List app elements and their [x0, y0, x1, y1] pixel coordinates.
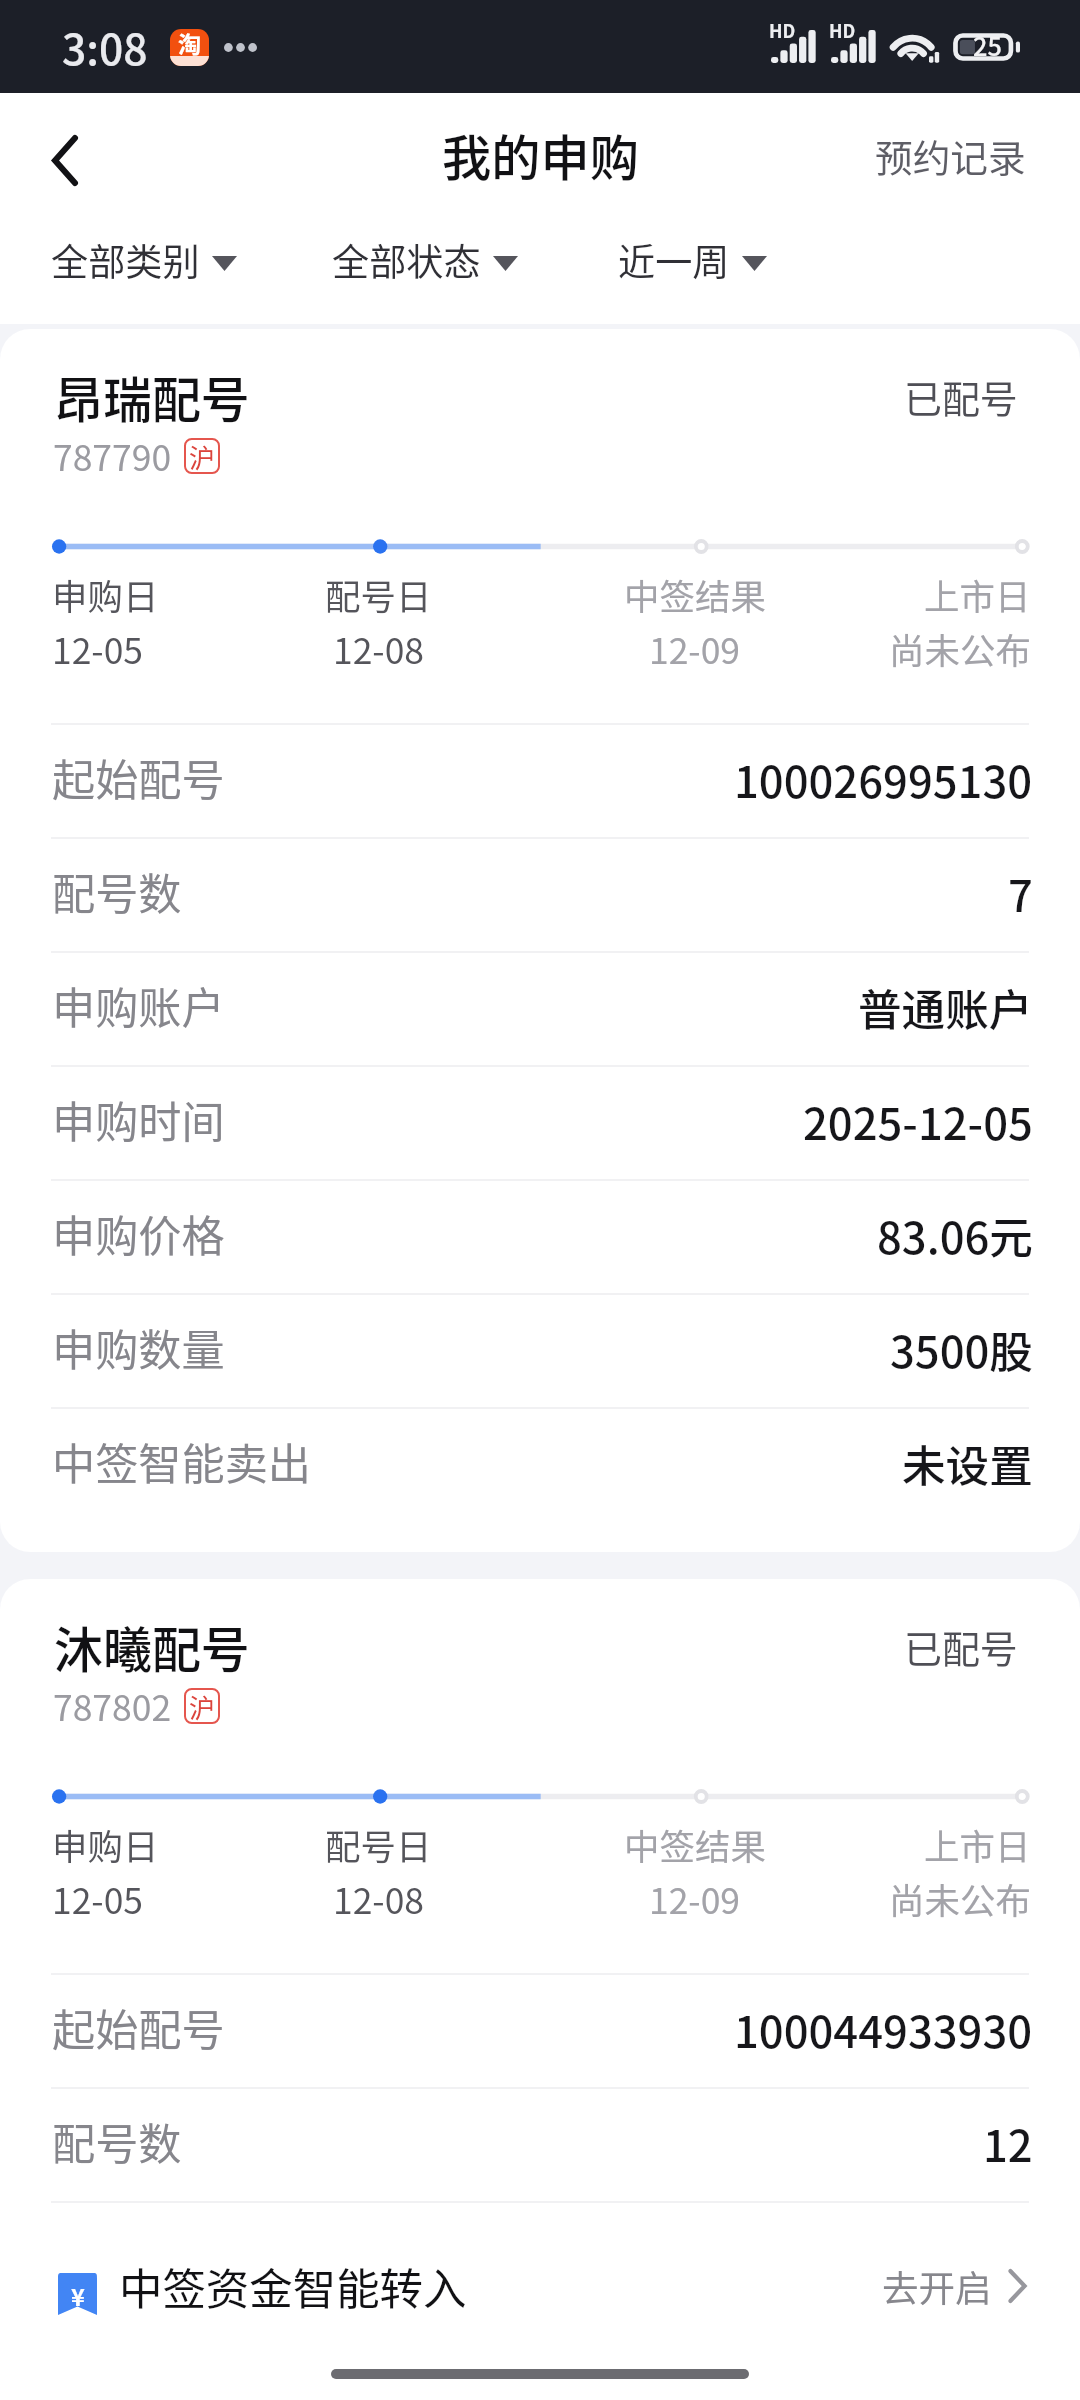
staticText: 申购日: [52, 1819, 159, 1870]
staticText: HD: [829, 17, 856, 43]
staticText: 12: [983, 2111, 1033, 2174]
staticText: 3:08: [62, 16, 148, 78]
button[interactable]: ¥: [0, 2212, 1080, 2336]
staticText: 起始配号: [52, 1996, 225, 2059]
staticText: 申购价格: [52, 1202, 225, 1265]
staticText: 12-05: [52, 1873, 144, 1924]
staticText: 已配号: [904, 1619, 1018, 1674]
button[interactable]: Back: [0, 93, 127, 217]
staticText: 尚未公布: [889, 1873, 1031, 1924]
staticText: 3500股: [890, 1317, 1033, 1380]
button[interactable]: 预约记录: [823, 93, 1080, 217]
button[interactable]: 全部类别: [32, 227, 256, 303]
staticText: 普通账户: [858, 2225, 1033, 2288]
staticText: 配号日: [325, 569, 432, 620]
staticText: 12-09: [649, 623, 741, 674]
staticText: ¥: [71, 2279, 85, 2313]
staticText: 787790: [53, 430, 172, 481]
staticText: 起始配号: [52, 746, 225, 809]
staticText: 去开启: [882, 2260, 992, 2313]
staticText: 尚未公布: [889, 623, 1031, 674]
staticText: 12-08: [333, 623, 425, 674]
button[interactable]: 昂瑞配号: [0, 329, 1080, 1552]
staticText: 申购时间: [52, 1088, 225, 1151]
staticText: 100026995130: [734, 747, 1033, 810]
staticText: 已配号: [904, 369, 1018, 424]
staticText: 预约记录: [875, 128, 1026, 183]
staticText: 上市日: [924, 569, 1031, 620]
button[interactable]: 沐曦配号: [0, 1579, 1080, 2400]
staticText: 配号数: [52, 2110, 182, 2173]
staticText: 沪: [189, 1688, 215, 1724]
staticText: HD: [769, 17, 796, 43]
staticText: 沐曦配号: [54, 1611, 250, 1682]
staticText: 昂瑞配号: [54, 361, 250, 432]
staticText: 25: [973, 27, 1002, 64]
staticText: 中签智能卖出: [52, 1430, 312, 1493]
staticText: 787802: [53, 1680, 172, 1731]
staticText: 中签结果: [624, 1819, 766, 1870]
staticText: 中签结果: [624, 569, 766, 620]
staticText: 全部状态: [332, 233, 481, 287]
staticText: 全部类别: [51, 233, 200, 287]
button[interactable]: 全部状态: [313, 227, 537, 303]
staticText: 12-08: [333, 1873, 425, 1924]
staticText: 未设置: [902, 1431, 1033, 1494]
staticText: 沪: [189, 438, 215, 474]
staticText: 配号日: [325, 1819, 432, 1870]
staticText: 上市日: [924, 1819, 1031, 1870]
button[interactable]: 近一周: [599, 227, 786, 303]
staticText: 7: [1008, 861, 1033, 924]
staticText: 申购账户: [52, 2224, 225, 2287]
staticText: 83.06元: [877, 1203, 1033, 1266]
staticText: 普通账户: [858, 975, 1033, 1038]
staticText: 申购日: [52, 569, 159, 620]
staticText: 近一周: [618, 233, 730, 287]
staticText: 我的申购: [442, 119, 639, 190]
staticText: 淘: [178, 29, 202, 59]
staticText: 中签资金智能转入: [119, 2255, 467, 2318]
staticText: 100044933930: [734, 1997, 1033, 2060]
staticText: 申购数量: [52, 1316, 225, 1379]
staticText: 配号数: [52, 860, 182, 923]
staticText: 2025-12-05: [803, 1089, 1033, 1152]
staticText: 12-09: [649, 1873, 741, 1924]
staticText: 申购账户: [52, 974, 225, 1037]
staticText: 12-05: [52, 623, 144, 674]
